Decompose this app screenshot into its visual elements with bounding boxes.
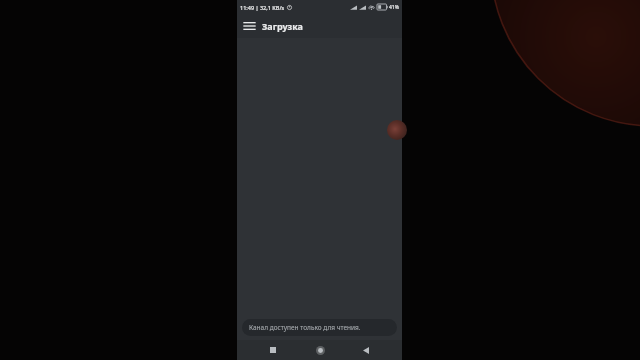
staticText: Загрузка	[262, 20, 303, 32]
staticText: Канал доступен только для чтения.	[249, 323, 361, 332]
button[interactable]: Open navigation menu	[237, 14, 261, 38]
button[interactable]: Recent apps	[263, 340, 283, 360]
button[interactable]: Канал доступен только для чтения.	[242, 319, 397, 336]
staticText: 11:49 | 32,1 KB/s	[240, 4, 285, 11]
staticText: 41%	[389, 4, 399, 11]
button[interactable]: Home	[310, 340, 330, 360]
button[interactable]: Back	[356, 340, 376, 360]
